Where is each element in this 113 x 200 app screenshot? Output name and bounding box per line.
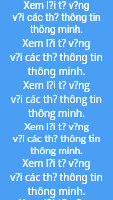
staticText: Xem l?i t? v?ng <box>0 198 113 200</box>
staticText: Xem l?i t? v?ng <box>0 36 113 50</box>
staticText: v?i các th? thông tin <box>0 132 113 144</box>
staticText: Xem l?i t? v?ng <box>0 156 113 170</box>
staticText: thông minh. <box>0 24 113 36</box>
staticText: thông minh. <box>0 106 113 120</box>
staticText: Xem l?i t? v?ng <box>0 120 113 132</box>
staticText: thông minh. <box>0 144 113 156</box>
staticText: v?i các th? thông tin <box>0 170 113 184</box>
staticText: v?i các th? thông tin <box>0 92 113 106</box>
staticText: v?i các th? thông tin <box>0 50 113 64</box>
staticText: Xem l?i t? v?ng <box>0 78 113 92</box>
staticText: thông minh. <box>0 64 113 78</box>
staticText: v?i các th? thông tin <box>0 12 113 24</box>
staticText: thông minh. <box>0 184 113 198</box>
staticText: Xem l?i t? v?ng <box>0 0 113 12</box>
